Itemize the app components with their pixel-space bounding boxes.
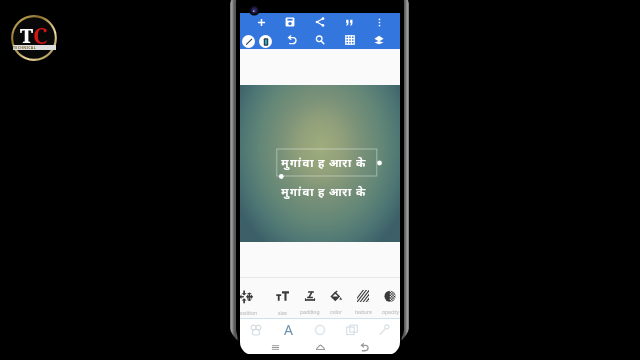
button[interactable]: Recents (267, 340, 284, 354)
button[interactable]: Back (356, 340, 373, 354)
button[interactable]: size (269, 280, 295, 318)
button[interactable]: Undo (283, 31, 301, 49)
button[interactable]: texture (350, 280, 376, 318)
staticText: मुगांवा ह आरा के (281, 155, 367, 171)
button[interactable]: opacity (377, 280, 400, 318)
button[interactable]: Share (311, 13, 329, 31)
button[interactable]: Save (281, 13, 299, 31)
button[interactable]: position (240, 280, 260, 318)
button[interactable]: Add (252, 13, 270, 31)
staticText: color (330, 309, 342, 316)
staticText: size (278, 310, 287, 317)
button[interactable]: Text (272, 319, 304, 340)
staticText: padding (300, 309, 320, 316)
staticText: A (284, 320, 293, 339)
staticText: T (20, 22, 34, 49)
button[interactable]: Brush (242, 35, 255, 48)
button[interactable]: Grid (341, 31, 359, 49)
button[interactable]: Frames (336, 319, 368, 340)
button[interactable]: color (323, 280, 349, 318)
staticText: texture (355, 309, 372, 316)
button[interactable]: More options (370, 13, 388, 31)
button[interactable]: Eraser (259, 35, 272, 48)
staticText: TECHNICAL CHAUDHARY (13, 45, 56, 50)
staticText: C (33, 20, 48, 50)
staticText: मुगांवा ह आरा के (281, 184, 367, 200)
button[interactable]: Layers (370, 31, 388, 49)
button[interactable]: Home (312, 340, 329, 354)
button[interactable]: Shapes (304, 319, 336, 340)
button[interactable]: Zoom (311, 31, 329, 49)
staticText: position (240, 310, 257, 317)
button[interactable]: Stickers (240, 319, 272, 340)
staticText: opacity (382, 309, 399, 316)
button[interactable]: Tools (368, 319, 400, 340)
button[interactable]: padding (297, 280, 323, 318)
button[interactable]: Quotes (340, 13, 358, 31)
